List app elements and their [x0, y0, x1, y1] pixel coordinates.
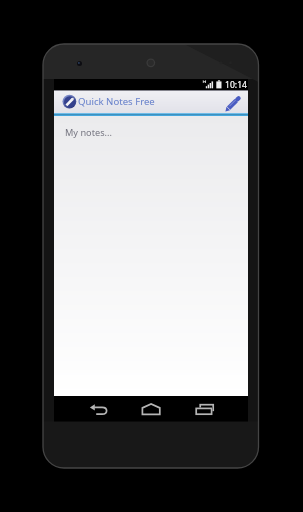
button[interactable] — [138, 398, 164, 420]
button[interactable] — [219, 91, 248, 113]
staticText: My notes... — [65, 126, 112, 139]
button[interactable] — [86, 398, 112, 420]
button[interactable] — [186, 398, 214, 420]
button[interactable]: Quick Notes Free — [60, 91, 160, 113]
staticText: 10:14 — [225, 79, 247, 91]
staticText: Quick Notes Free — [78, 95, 155, 108]
